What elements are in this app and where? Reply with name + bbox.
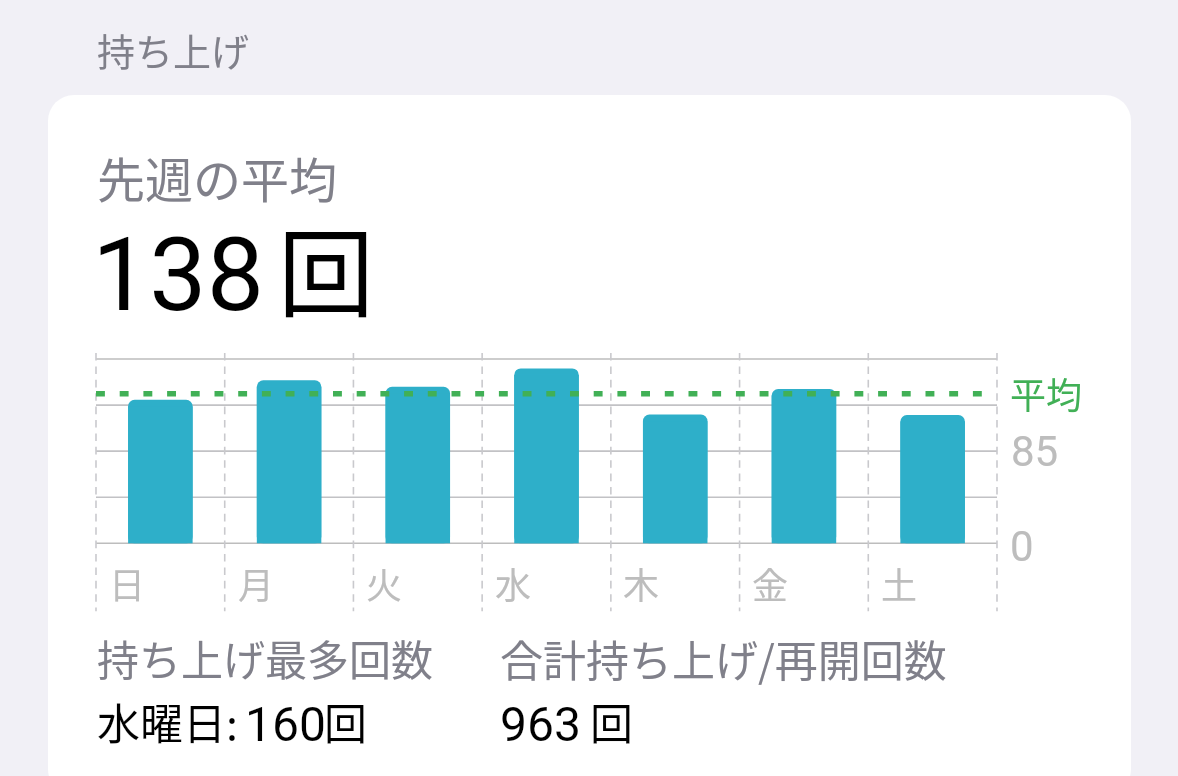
staticText: 土 — [881, 557, 918, 609]
staticText: 回 — [590, 690, 633, 752]
staticText: 85 — [1011, 427, 1059, 476]
staticText: 回 — [324, 690, 367, 752]
staticText: 先週の平均 — [97, 142, 338, 212]
staticText: 月 — [238, 557, 275, 609]
staticText: 合計持ち上げ/再開回数 — [500, 627, 947, 689]
staticText: 水曜日: — [97, 690, 238, 752]
staticText: 回 — [278, 198, 374, 337]
staticText: 0 — [1010, 522, 1034, 571]
staticText: 日 — [109, 557, 146, 609]
staticText: 160 — [245, 696, 326, 752]
staticText: 水 — [495, 557, 532, 609]
staticText: 火 — [366, 557, 403, 609]
staticText: 持ち上げ最多回数 — [97, 627, 500, 688]
staticText: 963 — [500, 696, 581, 752]
other: 週間の持ち上げ回数グラフ — [96, 359, 1106, 619]
staticText: 平均 — [1010, 367, 1083, 419]
staticText: 金 — [752, 557, 789, 609]
staticText: 木 — [623, 557, 660, 609]
staticText: 持ち上げ — [97, 22, 250, 77]
button[interactable]: 持ち上げ 先週の平均 138 回 — [48, 95, 1131, 776]
staticText: 138 — [92, 215, 264, 335]
